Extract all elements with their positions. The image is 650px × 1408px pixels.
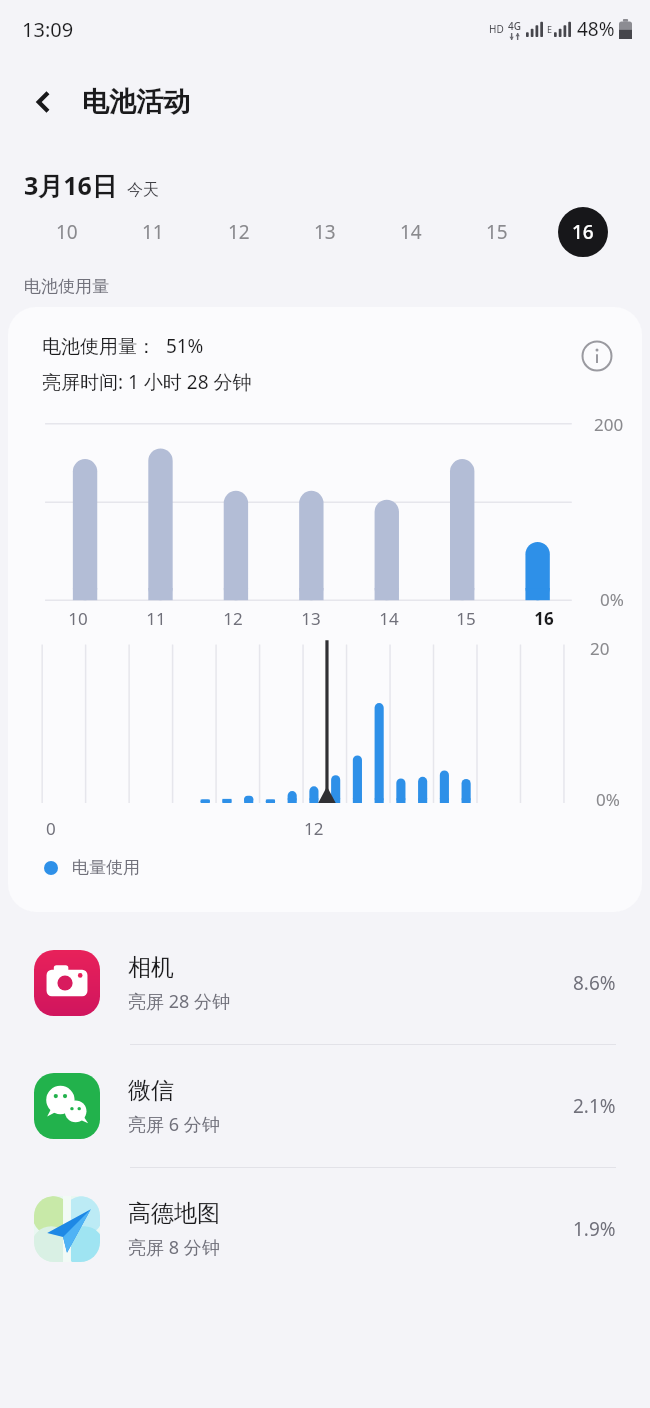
staticText: 13: [314, 219, 336, 245]
button[interactable]: 高德地图: [0, 1168, 650, 1290]
staticText: 亮屏时间: 1 小时 28 分钟: [42, 369, 252, 395]
staticText: 20: [590, 637, 610, 660]
staticText: 10: [56, 219, 78, 245]
staticText: HD: [489, 22, 504, 36]
button[interactable]: 13: [302, 209, 348, 255]
staticText: 0%: [596, 788, 620, 811]
button[interactable]: 15: [474, 209, 520, 255]
button[interactable]: Back: [20, 78, 68, 126]
staticText: 3月16日: [24, 168, 117, 202]
staticText: 亮屏 6 分钟: [128, 1112, 220, 1137]
staticText: 电量使用: [72, 857, 140, 878]
staticText: 14: [400, 219, 422, 245]
staticText: 4G: [508, 19, 521, 33]
staticText: 1.9%: [573, 1216, 616, 1242]
staticText: 2.1%: [573, 1093, 616, 1119]
staticText: 微信: [128, 1076, 174, 1105]
button[interactable]: 16: [560, 209, 606, 255]
button[interactable]: 相机: [0, 922, 650, 1044]
button[interactable]: 10: [44, 209, 90, 255]
staticText: 电池使用量: [24, 276, 109, 297]
staticText: 10: [65, 607, 91, 630]
staticText: 14: [376, 607, 402, 630]
staticText: 13:09: [22, 16, 74, 43]
staticText: 12: [304, 817, 324, 840]
staticText: 相机: [128, 953, 174, 982]
staticText: 15: [453, 607, 479, 630]
staticText: 高德地图: [128, 1199, 220, 1228]
staticText: 0: [46, 817, 56, 840]
staticText: 8.6%: [573, 970, 616, 996]
staticText: 13: [298, 607, 324, 630]
staticText: 11: [143, 607, 169, 630]
button[interactable]: 微信: [0, 1045, 650, 1167]
staticText: 15: [486, 219, 508, 245]
staticText: 0%: [600, 588, 624, 611]
staticText: E: [547, 23, 553, 35]
staticText: 电池使用量： 51%: [42, 333, 204, 359]
staticText: 12: [220, 607, 246, 630]
staticText: 亮屏 28 分钟: [128, 989, 230, 1014]
button[interactable]: 12: [216, 209, 262, 255]
staticText: 12: [228, 219, 250, 245]
staticText: 48%: [577, 16, 615, 42]
staticText: 今天: [127, 180, 159, 200]
button[interactable]: 11: [130, 209, 176, 255]
button[interactable]: 14: [388, 209, 434, 255]
staticText: 16: [572, 219, 594, 245]
staticText: 16: [531, 607, 557, 630]
staticText: 电池活动: [82, 85, 190, 119]
button[interactable]: Information: [574, 333, 620, 379]
staticText: 200: [594, 413, 624, 436]
staticText: 亮屏 8 分钟: [128, 1235, 220, 1260]
staticText: 11: [142, 219, 164, 245]
